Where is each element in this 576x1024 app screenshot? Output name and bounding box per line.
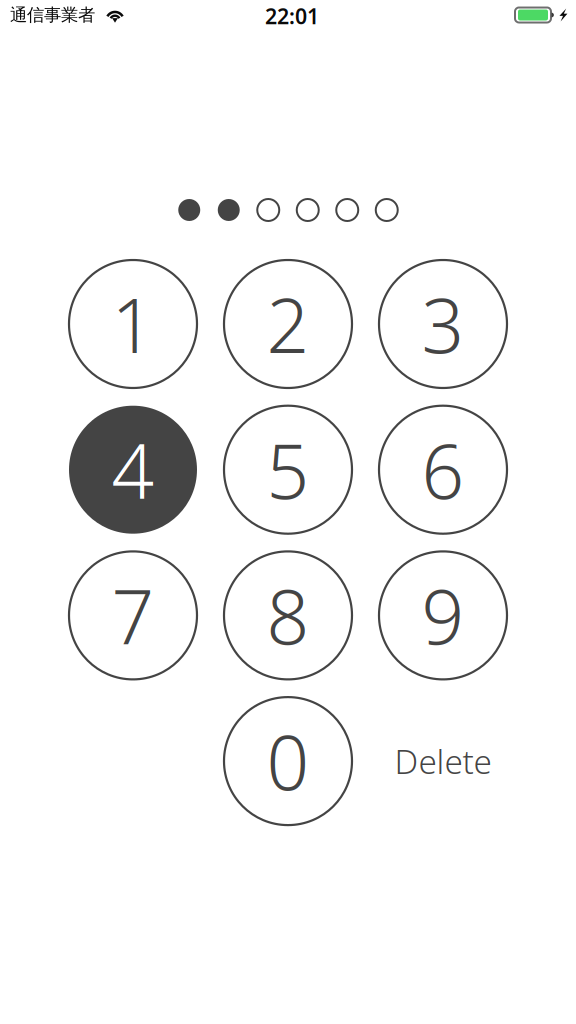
staticText: 通信事業者	[10, 4, 95, 26]
button[interactable]: 2	[224, 260, 352, 388]
staticText: Delete	[394, 739, 491, 783]
button[interactable]: 5	[224, 406, 352, 534]
staticText: 2	[266, 274, 309, 374]
button[interactable]: Delete	[379, 697, 507, 825]
staticText: 5	[266, 420, 309, 519]
button[interactable]: 1	[69, 260, 197, 388]
staticText: 3	[421, 274, 464, 374]
staticText: 1	[111, 274, 154, 374]
staticText: 4	[111, 420, 154, 519]
button[interactable]: 4	[69, 406, 197, 534]
staticText: 7	[111, 566, 154, 665]
button[interactable]: 8	[224, 551, 352, 679]
staticText: 8	[266, 566, 309, 665]
staticText: 9	[421, 566, 464, 665]
button[interactable]: 0	[224, 697, 352, 825]
button[interactable]: 9	[379, 551, 507, 679]
button[interactable]: 3	[379, 260, 507, 388]
button[interactable]: 6	[379, 406, 507, 534]
staticText: 6	[421, 420, 464, 519]
button[interactable]: 7	[69, 551, 197, 679]
staticText: 22:01	[265, 2, 319, 30]
staticText: 0	[266, 711, 309, 811]
